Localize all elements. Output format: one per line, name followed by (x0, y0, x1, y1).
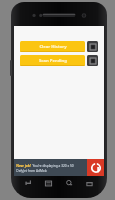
staticText: DefyJet from AdMob (16, 169, 47, 173)
button[interactable]: Clear History (20, 41, 85, 52)
button[interactable]: Menu (40, 176, 57, 190)
staticText: Clear History (39, 44, 67, 50)
button[interactable]: AdMob advertisement (87, 159, 104, 176)
button[interactable]: Search (61, 176, 78, 190)
button[interactable]: Back (20, 176, 37, 190)
staticText: You're displaying a 320 x 50 (32, 164, 74, 168)
button[interactable]: New job! (14, 159, 104, 176)
button[interactable]: Scan pending options (87, 55, 98, 66)
button[interactable]: Home (81, 176, 98, 190)
button[interactable]: Scan Pending (20, 55, 85, 66)
staticText: New job! (16, 163, 31, 168)
staticText: Scan Pending (39, 58, 67, 64)
button[interactable]: Clear history options (87, 41, 98, 52)
